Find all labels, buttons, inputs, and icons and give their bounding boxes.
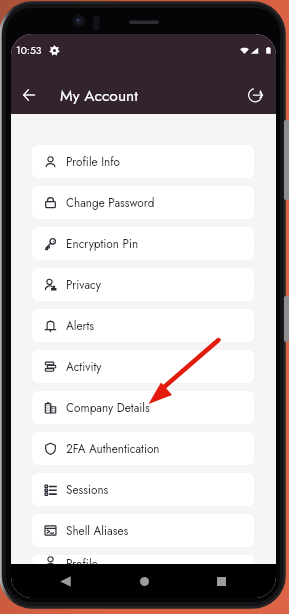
button[interactable]: Home — [130, 567, 158, 595]
staticText: My Account — [60, 84, 139, 107]
staticText: Company Details — [66, 399, 150, 416]
button[interactable]: Profile Info — [32, 145, 254, 178]
staticText: Shell Aliases — [66, 522, 129, 539]
button[interactable]: Change Password — [32, 186, 254, 219]
staticText: Sessions — [66, 481, 109, 498]
button[interactable]: Back — [51, 567, 79, 595]
staticText: Privacy — [66, 276, 101, 293]
staticText: Activity — [66, 358, 102, 375]
staticText: Alerts — [66, 317, 95, 334]
staticText: 2FA Authentication — [66, 440, 160, 457]
button[interactable]: Logout — [239, 79, 271, 111]
button[interactable]: Company Details — [32, 391, 254, 424]
staticText: 10:53 — [16, 43, 42, 58]
button[interactable]: 2FA Authentication — [32, 432, 254, 465]
button[interactable]: Privacy — [32, 268, 254, 301]
staticText: Change Password — [66, 194, 155, 211]
staticText: Profile — [66, 555, 98, 564]
button[interactable]: Sessions — [32, 473, 254, 506]
button[interactable]: Activity — [32, 350, 254, 383]
button[interactable]: Profile — [32, 555, 254, 564]
button[interactable]: Alerts — [32, 309, 254, 342]
staticText: Encryption Pin — [66, 235, 139, 252]
button[interactable]: Recents — [207, 567, 235, 595]
button[interactable]: Back — [11, 77, 47, 113]
button[interactable]: Shell Aliases — [32, 514, 254, 547]
button[interactable]: Encryption Pin — [32, 227, 254, 260]
staticText: Profile Info — [66, 153, 120, 170]
